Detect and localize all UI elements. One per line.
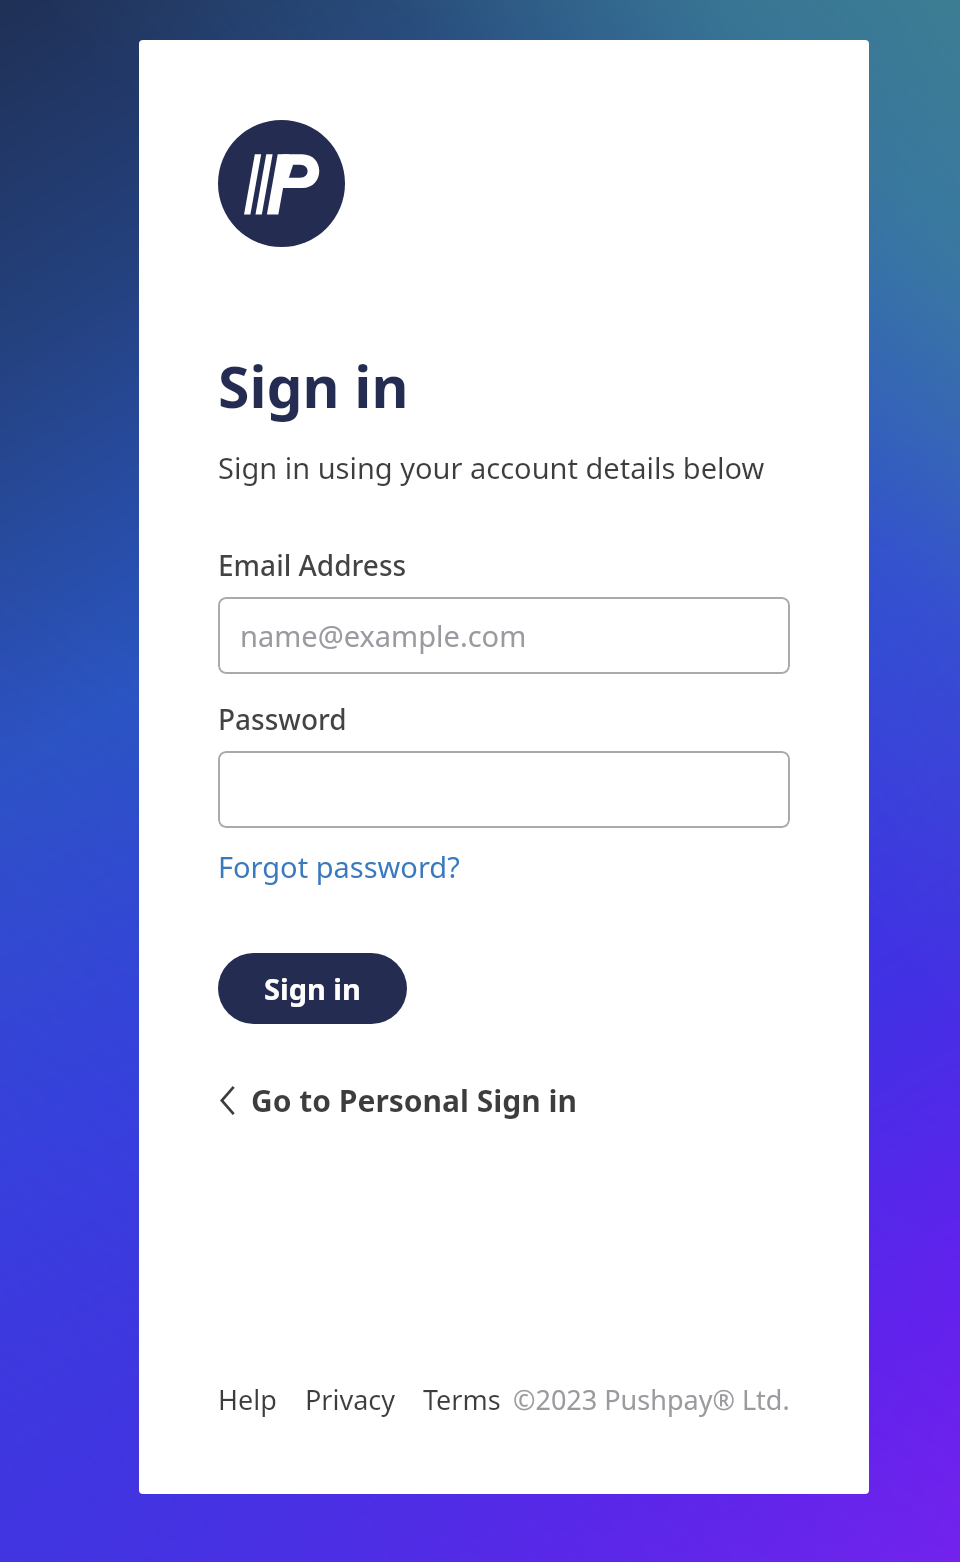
- staticText: Forgot password?: [218, 847, 460, 886]
- staticText: name@example.com: [240, 616, 527, 655]
- button[interactable]: Help: [218, 1381, 277, 1418]
- staticText: Go to Personal Sign in: [251, 1080, 578, 1121]
- staticText: Sign in: [264, 969, 361, 1008]
- staticText: Sign in: [218, 347, 409, 425]
- staticText: Terms: [423, 1381, 501, 1418]
- button[interactable]: name@example.com: [218, 597, 790, 674]
- staticText: ©2023 Pushpay® Ltd.: [513, 1381, 790, 1418]
- other: Pushpay logo: [218, 120, 345, 247]
- staticText: Sign in using your account details below: [218, 448, 765, 487]
- button[interactable]: [218, 751, 790, 828]
- button[interactable]: Privacy: [305, 1381, 396, 1418]
- button[interactable]: Sign in: [218, 953, 407, 1024]
- staticText: Password: [218, 700, 347, 738]
- staticText: Help: [218, 1381, 277, 1418]
- button[interactable]: Go to Personal Sign in: [218, 1080, 578, 1121]
- staticText: Email Address: [218, 546, 407, 584]
- button[interactable]: Terms: [423, 1381, 501, 1418]
- staticText: Privacy: [305, 1381, 396, 1418]
- button[interactable]: Forgot password?: [218, 847, 460, 886]
